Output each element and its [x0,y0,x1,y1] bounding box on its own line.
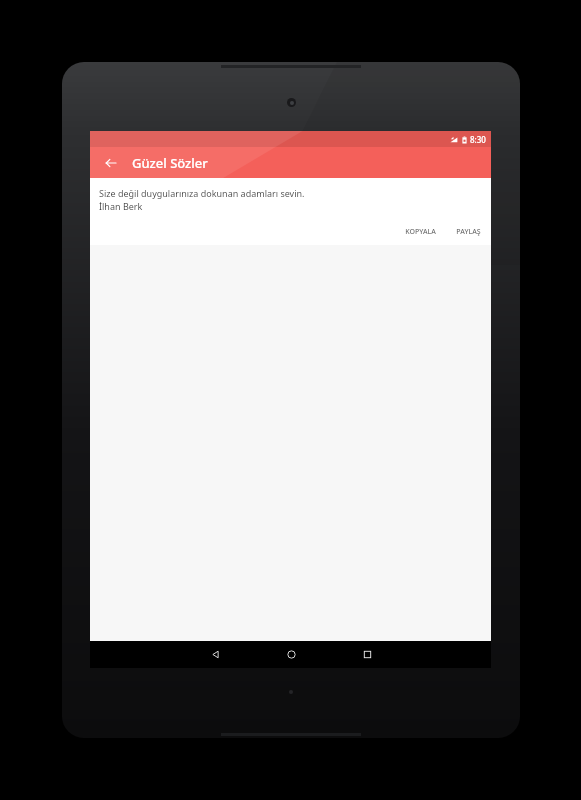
button[interactable]: KOPYALA [401,224,440,240]
staticText: Güzel Sözler [132,154,208,172]
staticText: Size değil duygularınıza dokunan adamlar… [99,187,305,199]
button[interactable]: Recent apps [341,641,393,668]
button[interactable]: Back [98,150,124,176]
staticText: 8:30 [470,134,486,145]
staticText: KOPYALA [405,227,436,237]
staticText: PAYLAŞ [456,227,481,237]
button[interactable]: Back [189,641,241,668]
button[interactable]: Home [265,641,317,668]
staticText: İlhan Berk [99,200,143,212]
button[interactable]: PAYLAŞ [452,224,485,240]
